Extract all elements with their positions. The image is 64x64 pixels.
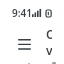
staticText: 9:41: [12, 6, 32, 20]
button[interactable]: Menu: [12, 33, 36, 57]
staticText: Overview: [46, 26, 52, 64]
